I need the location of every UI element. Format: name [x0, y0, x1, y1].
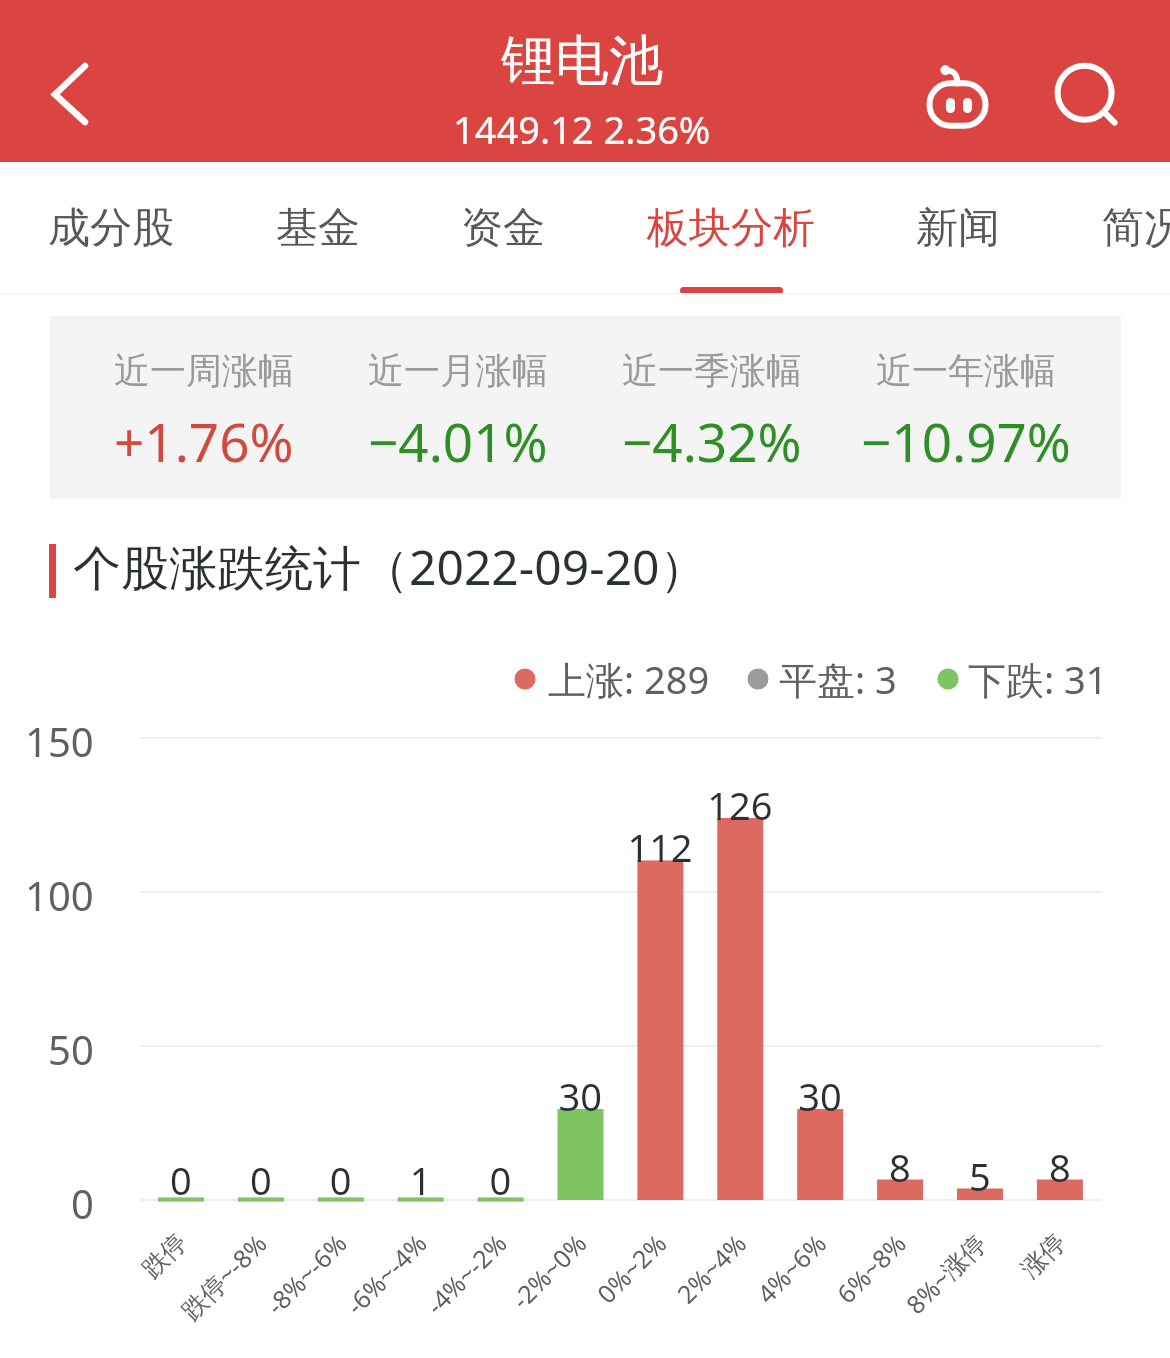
staticText: 近一季涨幅: [622, 348, 802, 393]
staticText: 基金: [276, 202, 360, 255]
button[interactable]: AI assistant: [912, 52, 1002, 142]
staticText: 近一周涨幅: [114, 348, 294, 393]
button[interactable]: 成分股: [12, 162, 210, 294]
staticText: 个股涨跌统计（2022-09-20）: [73, 534, 708, 600]
button[interactable]: 简况: [1066, 162, 1170, 294]
button[interactable]: Back: [20, 44, 120, 144]
staticText: 近一月涨幅: [368, 348, 548, 393]
staticText: +1.76%: [114, 405, 294, 477]
button[interactable]: 资金: [425, 162, 581, 294]
staticText: −4.01%: [368, 405, 548, 477]
button[interactable]: 基金: [240, 162, 396, 294]
staticText: 近一年涨幅: [876, 348, 1056, 393]
button[interactable]: Search: [1040, 55, 1130, 145]
staticText: 资金: [461, 202, 545, 255]
staticText: −10.97%: [861, 405, 1071, 477]
staticText: 成分股: [48, 202, 174, 255]
button[interactable]: 板块分析: [611, 162, 851, 294]
staticText: 新闻: [916, 202, 1000, 255]
staticText: 1449.12 2.36%: [453, 103, 711, 155]
staticText: 简况: [1102, 202, 1170, 255]
staticText: 板块分析: [647, 202, 815, 255]
staticText: 锂电池: [501, 27, 663, 95]
staticText: −4.32%: [622, 405, 802, 477]
button[interactable]: 新闻: [880, 162, 1036, 294]
